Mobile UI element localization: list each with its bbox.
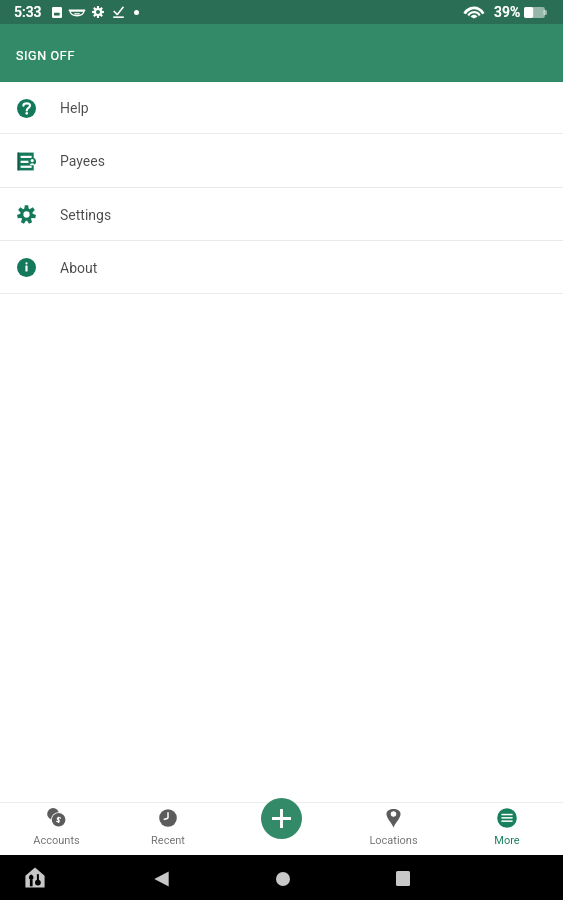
staticText: Locations [369, 834, 418, 847]
other: Back [154, 871, 169, 887]
other: Assistant [25, 867, 45, 888]
staticText: About [60, 260, 98, 276]
button[interactable]: Recent [112, 803, 224, 855]
other: Recents [396, 871, 410, 886]
button[interactable]: About [0, 241, 563, 294]
button[interactable]: Payees [0, 134, 563, 188]
button[interactable]: Help [0, 82, 563, 134]
staticText: Help [60, 100, 89, 116]
button[interactable]: Accounts [0, 803, 112, 855]
staticText: More [494, 834, 520, 847]
staticText: Settings [60, 207, 112, 223]
button[interactable]: More [450, 803, 563, 855]
staticText: SIGN OFF [16, 48, 75, 63]
button[interactable]: Locations [337, 803, 450, 855]
staticText: 5:33 [14, 4, 42, 20]
staticText: Recent [151, 834, 185, 847]
staticText: Payees [60, 153, 105, 169]
staticText: 39% [494, 4, 521, 20]
button[interactable]: SIGN OFF [8, 40, 83, 71]
staticText: Accounts [33, 834, 80, 847]
other: Home [276, 872, 290, 886]
button[interactable]: Settings [0, 188, 563, 241]
button[interactable]: Add [261, 798, 302, 839]
